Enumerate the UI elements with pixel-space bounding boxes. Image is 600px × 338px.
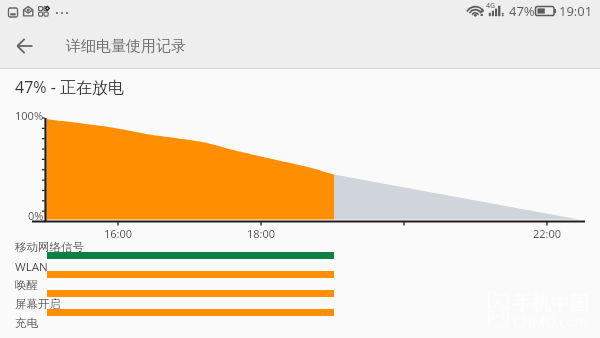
staticText: 18:00: [247, 226, 276, 241]
staticText: WLAN: [15, 259, 48, 275]
staticText: 47% - 正在放电: [15, 76, 125, 98]
staticText: 16:00: [104, 226, 133, 241]
staticText: 唤醒: [15, 278, 38, 292]
staticText: 4G: [486, 1, 496, 11]
button[interactable]: Back: [11, 32, 39, 60]
staticText: 22:00: [533, 226, 562, 241]
staticText: 详细电量使用记录: [66, 37, 186, 56]
staticText: 屏幕开启: [15, 297, 61, 311]
staticText: 100%: [15, 108, 44, 123]
button[interactable]: 唤醒: [0, 274, 600, 293]
staticText: 移动网络信号: [15, 240, 84, 254]
staticText: 47%: [509, 2, 535, 20]
button[interactable]: WLAN: [0, 255, 600, 274]
button[interactable]: 移动网络信号: [0, 236, 600, 255]
staticText: 0%: [28, 208, 44, 223]
button[interactable]: 充电: [0, 312, 600, 331]
staticText: 19:01: [559, 2, 593, 20]
button[interactable]: 屏幕开启: [0, 293, 600, 312]
staticText: 充电: [15, 316, 38, 330]
